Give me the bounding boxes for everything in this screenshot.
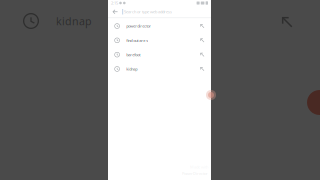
staticText: kidnap xyxy=(126,66,137,72)
button[interactable]: find out are s xyxy=(108,33,211,47)
button[interactable]: barefoot xyxy=(108,47,211,62)
button[interactable]: powerdirector xyxy=(108,19,211,33)
button[interactable]: kidnap xyxy=(108,62,211,76)
staticText: powerdirector xyxy=(126,23,151,29)
staticText: find out are s xyxy=(126,38,148,43)
button[interactable]: Search or type web address xyxy=(108,6,211,17)
staticText: PowerDirector xyxy=(182,171,208,176)
staticText: barefoot xyxy=(126,52,140,57)
staticText: kidnap xyxy=(56,14,92,28)
staticText: Search or type web address xyxy=(123,9,172,14)
staticText: 2:15 xyxy=(111,0,118,6)
